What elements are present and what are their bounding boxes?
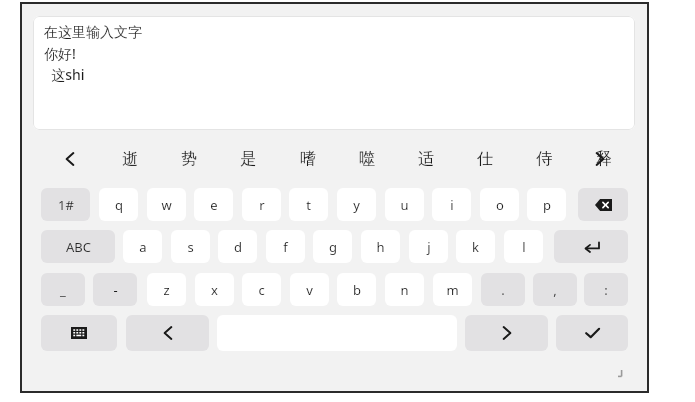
button[interactable]: ,	[533, 273, 577, 306]
button[interactable]: i	[432, 188, 471, 221]
button[interactable]: z	[147, 273, 186, 306]
button[interactable]: o	[480, 188, 519, 221]
staticText: g	[329, 238, 337, 256]
staticText: ,	[553, 281, 557, 299]
button[interactable]: 仕	[463, 143, 507, 175]
staticText: 势	[181, 149, 197, 169]
button[interactable]: p	[527, 188, 566, 221]
button[interactable]: Previous candidates	[52, 143, 88, 175]
button[interactable]: Move cursor right	[465, 315, 548, 351]
button[interactable]: 1#	[41, 188, 90, 221]
staticText: z	[163, 281, 170, 299]
staticText: i	[450, 196, 454, 214]
staticText: u	[400, 196, 409, 214]
button[interactable]: x	[195, 273, 234, 306]
staticText: 这shi	[44, 65, 85, 84]
staticText: c	[258, 281, 265, 299]
staticText: o	[496, 196, 504, 214]
staticText: y	[353, 196, 360, 214]
staticText: 嗜	[300, 149, 316, 169]
staticText: r	[259, 196, 265, 214]
button[interactable]: y	[337, 188, 376, 221]
button[interactable]: 在这里输入文字	[33, 16, 635, 130]
staticText: b	[353, 281, 361, 299]
button[interactable]: Move cursor left	[126, 315, 209, 351]
staticText: k	[472, 238, 479, 256]
staticText: ABC	[66, 238, 91, 256]
staticText: 适	[418, 149, 434, 169]
staticText: _	[60, 281, 66, 299]
button[interactable]: Enter	[554, 230, 628, 263]
staticText: 噬	[359, 149, 375, 169]
button[interactable]: s	[171, 230, 210, 263]
staticText: s	[187, 238, 194, 256]
button[interactable]: _	[41, 273, 85, 306]
button[interactable]: .	[481, 273, 525, 306]
staticText: 1#	[58, 196, 74, 214]
staticText: a	[139, 238, 147, 256]
staticText: w	[161, 196, 172, 214]
staticText: m	[446, 281, 459, 299]
button[interactable]: e	[194, 188, 233, 221]
staticText: 逝	[122, 149, 138, 169]
staticText: j	[427, 238, 431, 256]
staticText: 仕	[477, 149, 493, 169]
staticText: v	[306, 281, 313, 299]
staticText: n	[400, 281, 409, 299]
button[interactable]: n	[385, 273, 424, 306]
staticText: 侍	[536, 149, 552, 169]
button[interactable]: 势	[167, 143, 211, 175]
button[interactable]: 是	[226, 143, 270, 175]
button[interactable]: Switch keyboard	[41, 315, 117, 351]
button[interactable]: a	[123, 230, 162, 263]
button[interactable]: 噬	[345, 143, 389, 175]
button[interactable]: c	[242, 273, 281, 306]
button[interactable]: More candidates	[582, 143, 618, 175]
staticText: h	[376, 238, 385, 256]
button[interactable]: Confirm	[556, 315, 628, 351]
button[interactable]: l	[504, 230, 543, 263]
staticText: :	[604, 281, 608, 299]
button[interactable]: 释	[582, 143, 626, 175]
staticText: 你好!	[44, 44, 76, 63]
staticText: p	[543, 196, 551, 214]
button[interactable]: ABC	[41, 230, 115, 263]
button[interactable]: g	[313, 230, 352, 263]
button[interactable]: u	[385, 188, 424, 221]
staticText: l	[522, 238, 526, 256]
button[interactable]: r	[242, 188, 281, 221]
button[interactable]: v	[290, 273, 329, 306]
button[interactable]: q	[99, 188, 138, 221]
button[interactable]: :	[584, 273, 628, 306]
staticText: x	[211, 281, 218, 299]
staticText: f	[283, 238, 288, 256]
button[interactable]: 逝	[108, 143, 152, 175]
button[interactable]: 嗜	[286, 143, 330, 175]
button[interactable]: t	[289, 188, 328, 221]
button[interactable]: b	[337, 273, 376, 306]
staticText: 释	[596, 149, 612, 169]
button[interactable]: j	[409, 230, 448, 263]
staticText: d	[234, 238, 242, 256]
staticText: q	[115, 196, 123, 214]
button[interactable]: Backspace	[578, 188, 628, 221]
staticText: 在这里输入文字	[44, 24, 142, 42]
staticText: .	[501, 281, 505, 299]
button[interactable]: f	[266, 230, 305, 263]
button[interactable]: k	[456, 230, 495, 263]
staticText: e	[210, 196, 218, 214]
button[interactable]: m	[433, 273, 472, 306]
button[interactable]: 侍	[522, 143, 566, 175]
button[interactable]: h	[361, 230, 400, 263]
staticText: -	[113, 281, 118, 299]
staticText: 是	[240, 149, 256, 169]
button[interactable]: 适	[404, 143, 448, 175]
button[interactable]: w	[147, 188, 186, 221]
staticText: t	[306, 196, 311, 214]
button[interactable]: d	[218, 230, 257, 263]
button[interactable]: -	[93, 273, 137, 306]
